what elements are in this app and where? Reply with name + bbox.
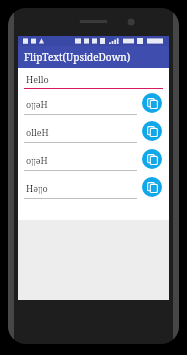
button[interactable]: Copy: [142, 149, 162, 169]
staticText: oןןǝH: [26, 154, 48, 166]
staticText: Hello: [26, 73, 49, 85]
button[interactable]: Copy: [142, 121, 162, 141]
button[interactable]: Hello: [24, 73, 163, 89]
staticText: FlipText(UpsideDown): [24, 50, 131, 64]
button[interactable]: Copy: [142, 177, 162, 197]
staticText: Hǝןןo: [26, 182, 48, 194]
staticText: olleH: [26, 126, 49, 138]
staticText: oןןǝH: [26, 98, 48, 110]
button[interactable]: Copy: [142, 93, 162, 113]
